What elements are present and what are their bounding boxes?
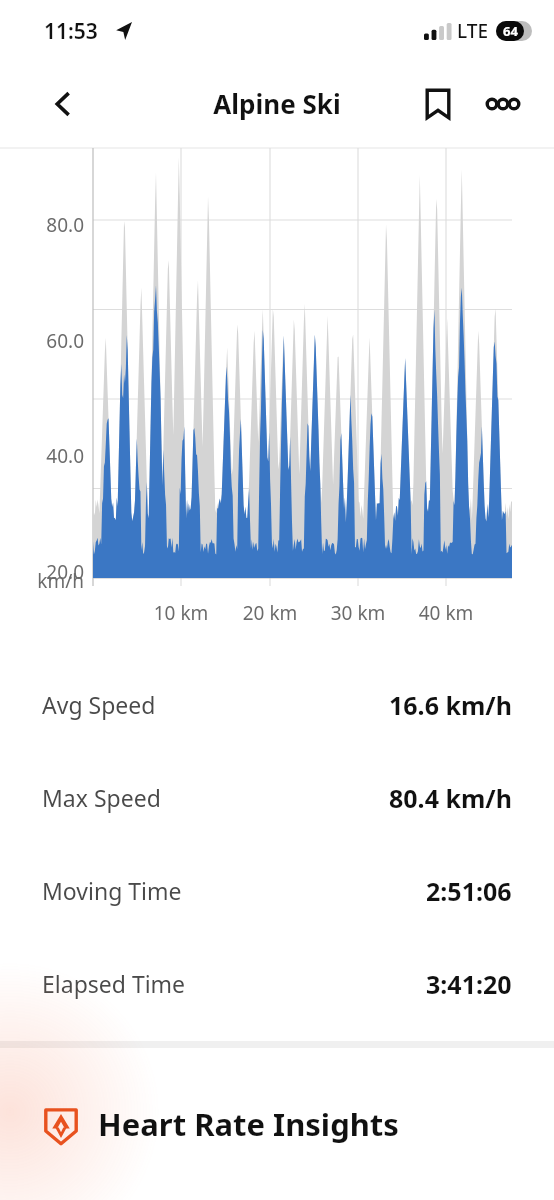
button[interactable]: Avg Speed — [0, 658, 554, 751]
staticText: Moving Time — [42, 875, 182, 906]
button[interactable]: Bookmark — [408, 74, 467, 133]
button[interactable]: Heart Rate Insights — [0, 1102, 554, 1146]
staticText: 3:41:20 — [426, 967, 512, 1001]
staticText: 11:53 — [44, 17, 98, 46]
staticText: 80.0 — [0, 212, 84, 238]
staticText: 20 km — [234, 600, 306, 626]
staticText: 30 km — [322, 600, 394, 626]
staticText: Heart Rate Insights — [98, 1103, 399, 1145]
staticText: Avg Speed — [42, 689, 156, 720]
button[interactable]: Back — [33, 74, 92, 133]
staticText: 2:51:06 — [426, 874, 512, 908]
button[interactable]: Max Speed — [0, 751, 554, 844]
staticText: 16.6 km/h — [389, 688, 512, 722]
staticText: 64 — [503, 22, 518, 40]
button[interactable]: Moving Time — [0, 844, 554, 937]
staticText: km/h — [0, 568, 84, 594]
staticText: 20.0 — [0, 559, 84, 585]
staticText: 10 km — [145, 600, 217, 626]
staticText: Elapsed Time — [42, 968, 186, 999]
button[interactable]: Elapsed Time — [0, 937, 554, 1030]
staticText: 60.0 — [0, 328, 84, 354]
staticText: 80.4 km/h — [389, 781, 512, 815]
staticText: 40.0 — [0, 443, 84, 469]
staticText: 40 km — [410, 600, 482, 626]
button[interactable]: More options — [473, 74, 532, 133]
staticText: Alpine Ski — [213, 86, 341, 121]
staticText: Max Speed — [42, 782, 161, 813]
staticText: LTE — [457, 18, 489, 44]
